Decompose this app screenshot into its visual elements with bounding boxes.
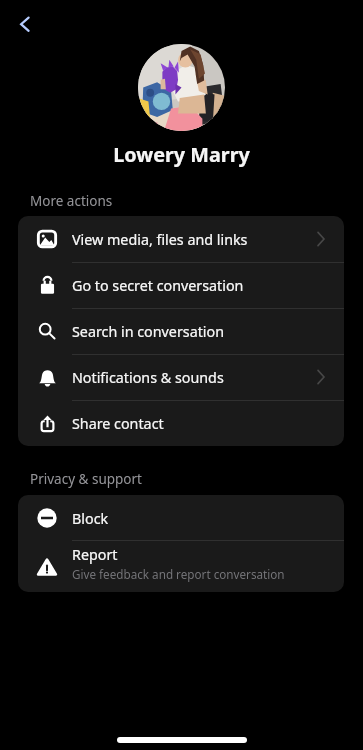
- button[interactable]: Search in conversation: [18, 308, 344, 354]
- staticText: View media, files and links: [72, 230, 248, 249]
- button[interactable]: Share contact: [18, 400, 344, 446]
- staticText: Privacy & support: [30, 470, 142, 488]
- staticText: Notifications & sounds: [72, 368, 224, 387]
- staticText: Search in conversation: [72, 322, 224, 341]
- staticText: Go to secret conversation: [72, 276, 244, 295]
- button[interactable]: Notifications & sounds: [18, 354, 344, 400]
- staticText: Lowery Marry: [0, 141, 363, 168]
- button[interactable]: Back: [6, 6, 46, 46]
- button[interactable]: Go to secret conversation: [18, 262, 344, 308]
- button[interactable]: Block: [18, 495, 344, 541]
- staticText: More actions: [30, 192, 113, 210]
- button[interactable]: View media, files and links: [18, 216, 344, 262]
- button[interactable]: Report: [18, 541, 344, 592]
- staticText: Share contact: [72, 414, 164, 433]
- staticText: Block: [72, 509, 109, 528]
- staticText: Give feedback and report conversation: [72, 566, 285, 582]
- staticText: Report: [72, 545, 118, 564]
